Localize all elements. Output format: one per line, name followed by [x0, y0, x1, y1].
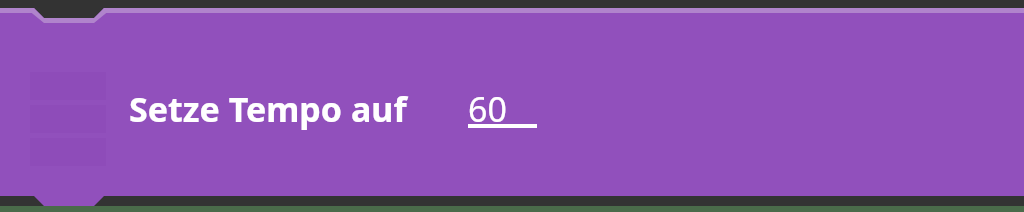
button[interactable]: Setze Tempo auf 60: [0, 0, 1024, 212]
